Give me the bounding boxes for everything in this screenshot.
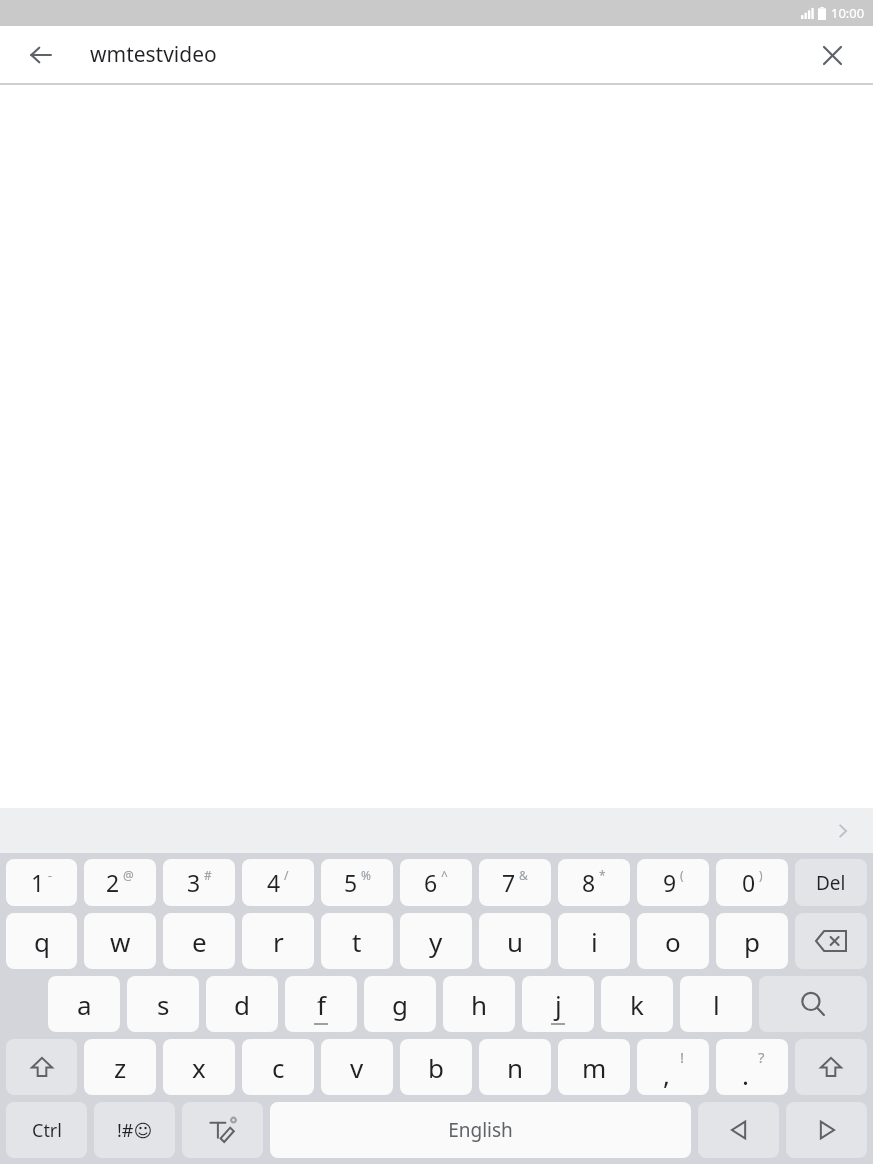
other: Move left xyxy=(728,1119,750,1141)
button[interactable]: Move left xyxy=(698,1102,779,1158)
button[interactable]: Clear xyxy=(811,34,853,76)
button[interactable]: Shift xyxy=(795,1039,867,1095)
button[interactable]: y xyxy=(400,913,472,969)
staticText: n xyxy=(507,1050,524,1085)
button[interactable]: , xyxy=(637,1039,709,1095)
staticText: . xyxy=(742,1057,749,1092)
staticText: # xyxy=(204,867,212,883)
other: Shift xyxy=(30,1055,54,1079)
button[interactable]: x xyxy=(163,1039,235,1095)
button[interactable]: e xyxy=(163,913,235,969)
staticText: @ xyxy=(123,867,134,883)
staticText: wmtestvideo xyxy=(90,40,217,69)
staticText: ! xyxy=(680,1047,685,1067)
button[interactable]: q xyxy=(6,913,77,969)
button[interactable]: 1 xyxy=(6,859,77,906)
staticText: m xyxy=(582,1050,607,1085)
staticText: !#☺ xyxy=(117,1118,153,1143)
button[interactable]: n xyxy=(479,1039,551,1095)
staticText: ( xyxy=(680,867,684,883)
button[interactable]: Backspace xyxy=(795,913,867,969)
staticText: r xyxy=(273,924,284,959)
staticText: a xyxy=(77,987,92,1022)
other: Backspace xyxy=(816,931,846,951)
button[interactable]: s xyxy=(127,976,199,1032)
button[interactable]: Handwriting xyxy=(182,1102,263,1158)
button[interactable]: 0 xyxy=(716,859,788,906)
button[interactable]: 2 xyxy=(84,859,156,906)
button[interactable]: v xyxy=(321,1039,393,1095)
button[interactable]: b xyxy=(400,1039,472,1095)
button[interactable]: a xyxy=(48,976,120,1032)
staticText: Del xyxy=(816,870,846,896)
other: Search xyxy=(800,991,826,1017)
staticText: & xyxy=(519,867,528,883)
staticText: 9 xyxy=(663,867,677,898)
button[interactable]: Back xyxy=(20,34,62,76)
button[interactable]: 8 xyxy=(558,859,630,906)
button[interactable]: i xyxy=(558,913,630,969)
button[interactable]: More suggestions xyxy=(825,813,861,849)
staticText: 8 xyxy=(582,867,596,898)
button[interactable]: u xyxy=(479,913,551,969)
button[interactable]: Ctrl xyxy=(6,1102,87,1158)
staticText: 2 xyxy=(106,867,120,898)
staticText: u xyxy=(507,924,524,959)
staticText: 0 xyxy=(742,867,756,898)
button[interactable]: . xyxy=(716,1039,788,1095)
button[interactable]: !#☺ xyxy=(94,1102,175,1158)
staticText: 4 xyxy=(267,867,281,898)
staticText: ? xyxy=(758,1047,765,1067)
button[interactable]: h xyxy=(443,976,515,1032)
staticText: w xyxy=(110,924,131,959)
button[interactable]: k xyxy=(601,976,673,1032)
staticText: 7 xyxy=(502,867,516,898)
staticText: h xyxy=(471,987,488,1022)
staticText: y xyxy=(429,924,443,959)
button[interactable]: 4 xyxy=(242,859,314,906)
button[interactable]: 7 xyxy=(479,859,551,906)
staticText: English xyxy=(448,1117,513,1143)
staticText: f xyxy=(317,987,326,1022)
button[interactable]: 9 xyxy=(637,859,709,906)
button[interactable]: o xyxy=(637,913,709,969)
staticText: g xyxy=(392,987,408,1022)
button[interactable]: z xyxy=(84,1039,156,1095)
button[interactable]: l xyxy=(680,976,752,1032)
staticText: / xyxy=(284,867,289,883)
button[interactable]: Del xyxy=(795,859,867,906)
staticText: ) xyxy=(759,867,763,883)
staticText: j xyxy=(555,987,562,1022)
staticText: l xyxy=(713,987,720,1022)
button[interactable]: j xyxy=(522,976,594,1032)
button[interactable]: Search xyxy=(759,976,867,1032)
staticText: e xyxy=(192,924,207,959)
staticText: 3 xyxy=(187,867,201,898)
button[interactable]: c xyxy=(242,1039,314,1095)
staticText: i xyxy=(591,924,598,959)
button[interactable]: m xyxy=(558,1039,630,1095)
staticText: 6 xyxy=(424,867,438,898)
button[interactable]: d xyxy=(206,976,278,1032)
staticText: - xyxy=(48,867,52,883)
staticText: x xyxy=(192,1050,206,1085)
button[interactable]: Move right xyxy=(786,1102,867,1158)
button[interactable]: p xyxy=(716,913,788,969)
button[interactable]: r xyxy=(242,913,314,969)
staticText: o xyxy=(665,924,681,959)
other: Shift xyxy=(819,1055,843,1079)
staticText: v xyxy=(350,1050,364,1085)
button[interactable]: t xyxy=(321,913,393,969)
button[interactable]: 3 xyxy=(163,859,235,906)
button[interactable]: f xyxy=(285,976,357,1032)
button[interactable]: Shift xyxy=(6,1039,77,1095)
staticText: k xyxy=(630,987,644,1022)
button[interactable]: g xyxy=(364,976,436,1032)
button[interactable]: English xyxy=(270,1102,691,1158)
button[interactable]: 6 xyxy=(400,859,472,906)
button[interactable]: 5 xyxy=(321,859,393,906)
staticText: 1 xyxy=(31,867,45,898)
staticText: t xyxy=(352,924,362,959)
staticText: 5 xyxy=(344,867,358,898)
button[interactable]: w xyxy=(84,913,156,969)
